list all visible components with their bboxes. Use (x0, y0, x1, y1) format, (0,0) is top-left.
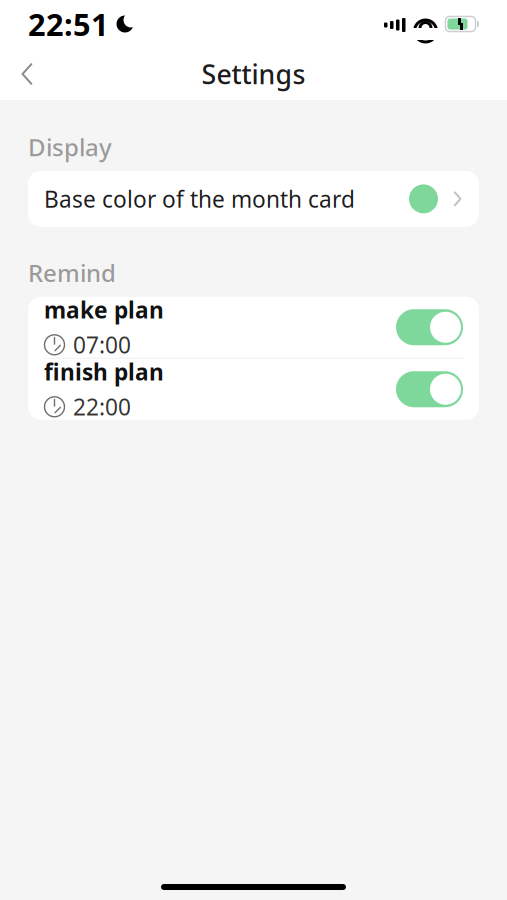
staticText: Display (28, 131, 112, 163)
staticText: Base color of the month card (44, 184, 355, 214)
staticText: 22:00 (73, 392, 131, 422)
staticText: Remind (28, 257, 116, 289)
staticText: 22:51 (28, 4, 109, 44)
staticText: 07:00 (73, 330, 131, 360)
button[interactable]: Base color of the month card (28, 171, 479, 227)
staticText: finish plan (44, 357, 164, 387)
button[interactable]: finish plan (28, 359, 479, 420)
staticText: make plan (44, 295, 164, 325)
button[interactable]: Toggle reminder (396, 309, 463, 345)
button[interactable]: make plan (28, 297, 479, 358)
button[interactable]: Back (0, 50, 54, 98)
staticText: Settings (201, 56, 305, 92)
button[interactable]: Toggle reminder (396, 371, 463, 407)
